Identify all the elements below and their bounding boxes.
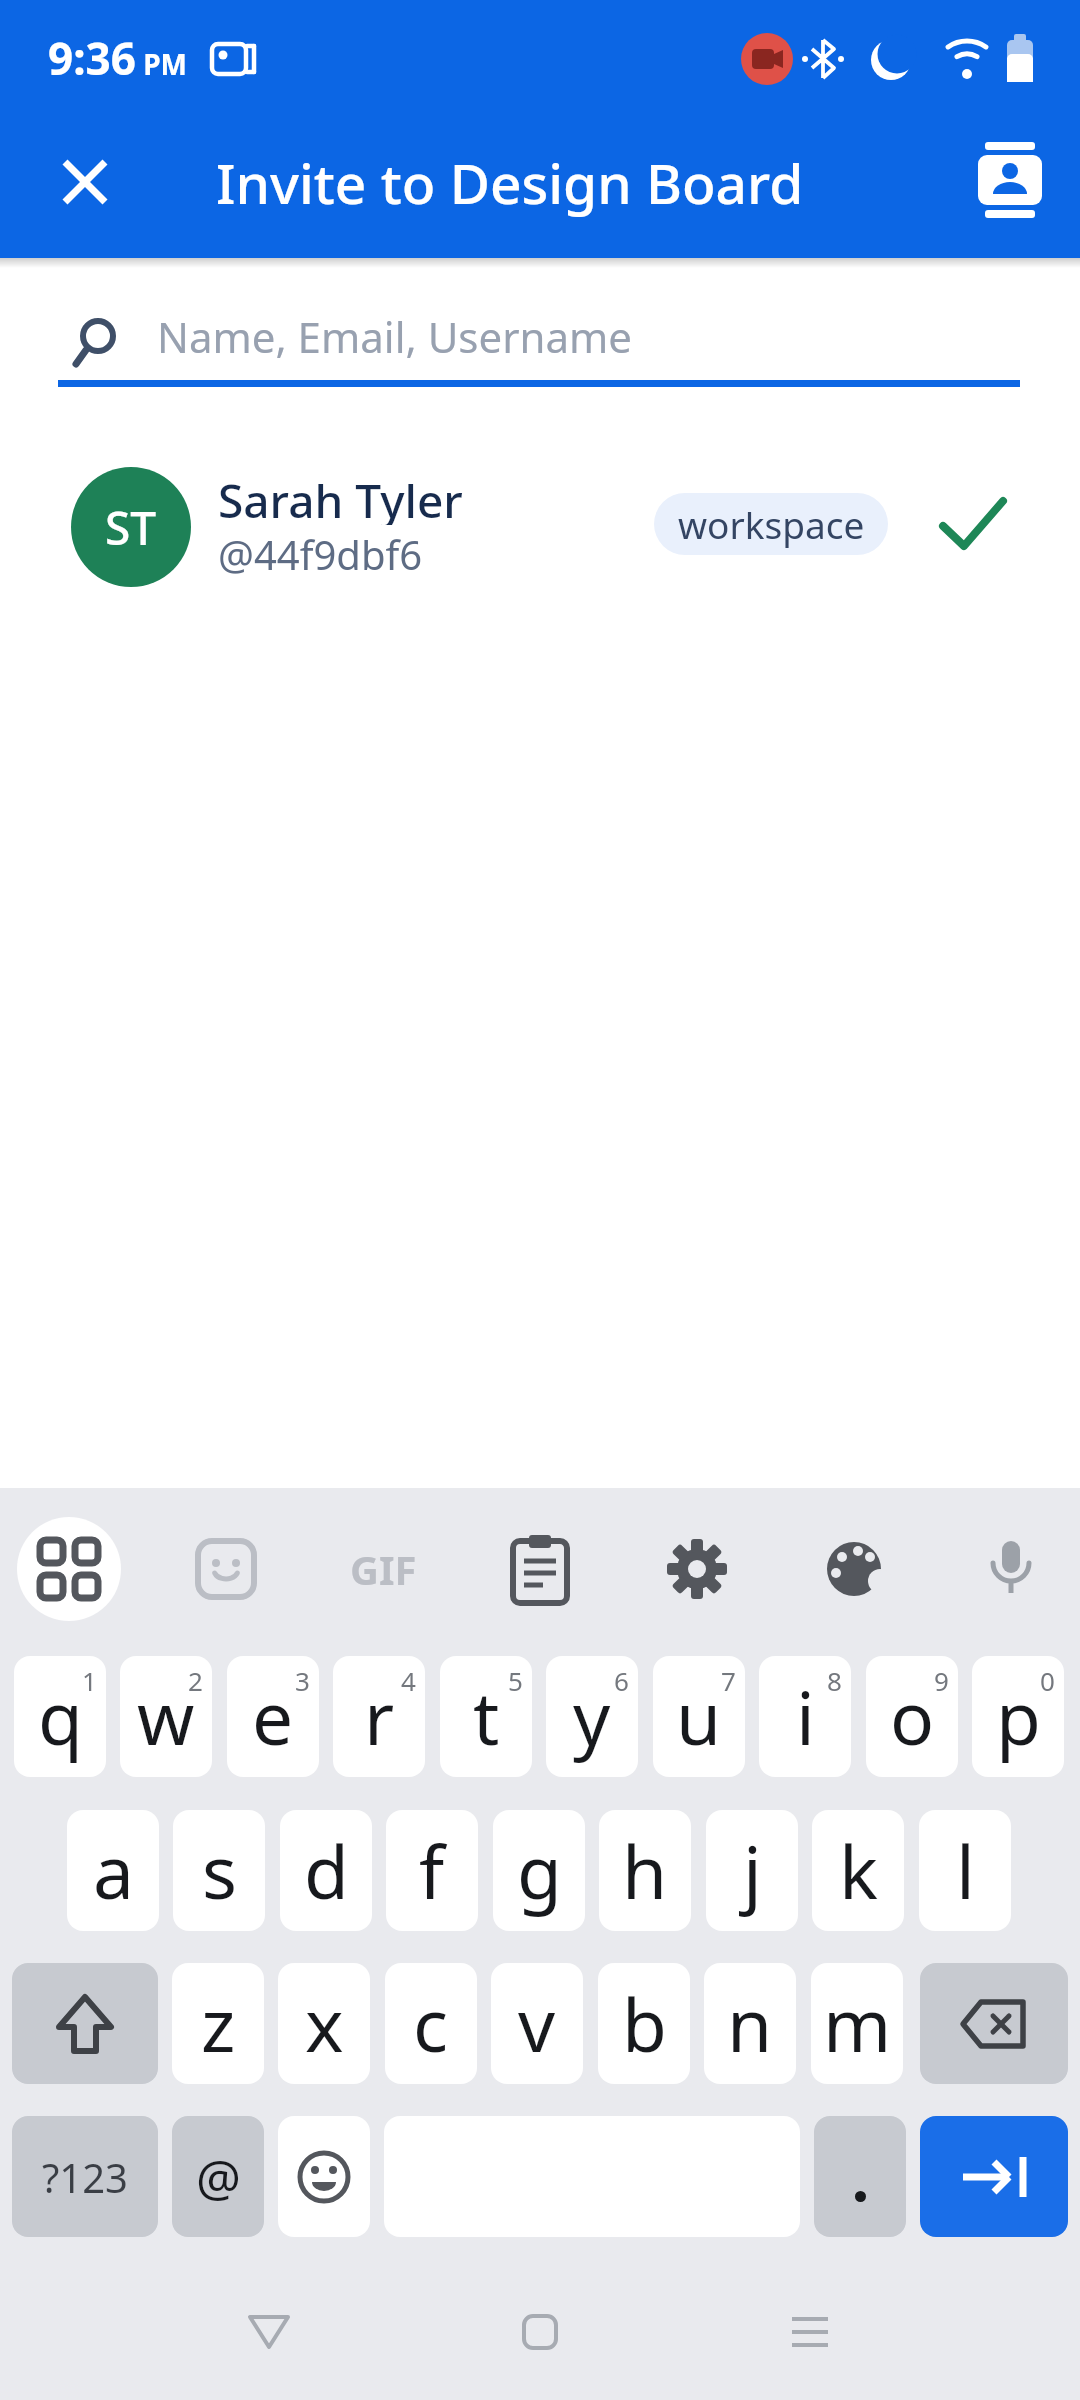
button[interactable]: a (67, 1810, 159, 1931)
staticText: d (304, 1821, 349, 1920)
button[interactable]: x (278, 1963, 370, 2084)
staticText: Name, Email, Username (157, 308, 632, 365)
button[interactable]: j (706, 1810, 798, 1931)
staticText: w (137, 1667, 195, 1766)
button[interactable] (920, 2116, 1068, 2237)
button[interactable]: d (280, 1810, 372, 1931)
button[interactable]: ST (0, 455, 1080, 600)
staticText: r (364, 1667, 395, 1766)
button[interactable]: u (653, 1656, 745, 1777)
staticText: v (518, 1974, 556, 2073)
staticText: t (473, 1667, 500, 1766)
button[interactable]: b (598, 1963, 690, 2084)
staticText: 8 (827, 1663, 842, 1698)
staticText: p (996, 1667, 1041, 1766)
staticText: Invite to Design Board (216, 145, 804, 220)
button[interactable]: GIF (330, 1533, 436, 1605)
staticText: 0 (1040, 1663, 1055, 1698)
button[interactable] (960, 130, 1060, 230)
button[interactable]: w (120, 1656, 212, 1777)
staticText: x (305, 1974, 344, 2073)
staticText: n (727, 1974, 773, 2073)
button[interactable]: e (227, 1656, 319, 1777)
button[interactable]: t (440, 1656, 532, 1777)
staticText: 7 (721, 1663, 736, 1698)
button[interactable] (975, 1533, 1047, 1605)
button[interactable] (17, 1517, 121, 1621)
button[interactable] (48, 145, 122, 219)
button[interactable] (920, 1963, 1068, 2084)
button[interactable]: c (385, 1963, 477, 2084)
button[interactable]: k (812, 1810, 904, 1931)
staticText: h (622, 1821, 668, 1920)
button[interactable]: f (386, 1810, 478, 1931)
staticText: l (956, 1821, 975, 1920)
button[interactable]: s (173, 1810, 265, 1931)
staticText: k (839, 1821, 878, 1920)
staticText: q (38, 1667, 83, 1766)
button[interactable]: i (759, 1656, 851, 1777)
button[interactable] (814, 2116, 906, 2237)
button[interactable]: Name, Email, Username (58, 292, 1020, 388)
staticText: c (413, 1974, 449, 2073)
staticText: 9:36 PM (48, 28, 187, 88)
staticText: s (202, 1821, 237, 1920)
staticText: 1 (82, 1663, 97, 1698)
staticText: u (676, 1667, 722, 1766)
staticText: b (622, 1974, 667, 2073)
staticText: 6 (614, 1663, 629, 1698)
staticText: f (419, 1821, 445, 1920)
button[interactable]: q (14, 1656, 106, 1777)
staticText: 2 (188, 1663, 203, 1698)
button[interactable]: z (172, 1963, 264, 2084)
staticText: GIF (350, 1542, 417, 1596)
staticText: z (201, 1974, 236, 2073)
staticText: Sarah Tyler (218, 469, 463, 525)
button[interactable]: y (546, 1656, 638, 1777)
staticText: ?123 (42, 2150, 128, 2204)
staticText: ST (105, 496, 157, 559)
button[interactable] (774, 2296, 846, 2368)
button[interactable]: l (919, 1810, 1011, 1931)
staticText: o (890, 1667, 935, 1766)
staticText: m (823, 1974, 892, 2073)
button[interactable]: @ (172, 2116, 264, 2237)
button[interactable]: h (599, 1810, 691, 1931)
button[interactable]: workspace (654, 493, 888, 555)
button[interactable] (233, 2296, 305, 2368)
staticText: @ (196, 2143, 241, 2211)
staticText: g (517, 1821, 562, 1920)
staticText: i (796, 1667, 815, 1766)
staticText: 9 (934, 1663, 949, 1698)
button[interactable]: v (491, 1963, 583, 2084)
button[interactable] (818, 1533, 890, 1605)
staticText: j (743, 1821, 762, 1920)
button[interactable] (278, 2116, 370, 2237)
button[interactable] (661, 1533, 733, 1605)
staticText: 3 (295, 1663, 310, 1698)
button[interactable]: r (333, 1656, 425, 1777)
button[interactable] (504, 2296, 576, 2368)
staticText: workspace (678, 499, 865, 549)
button[interactable]: o (866, 1656, 958, 1777)
staticText: e (252, 1667, 294, 1766)
staticText: 4 (401, 1663, 416, 1698)
button[interactable]: n (704, 1963, 796, 2084)
button[interactable]: m (811, 1963, 903, 2084)
staticText: y (573, 1667, 611, 1766)
staticText: 5 (508, 1663, 523, 1698)
button[interactable] (12, 1963, 158, 2084)
button[interactable] (504, 1529, 576, 1609)
staticText: a (93, 1821, 134, 1920)
button[interactable]: ?123 (12, 2116, 158, 2237)
button[interactable] (190, 1533, 262, 1605)
button[interactable]: p (972, 1656, 1064, 1777)
button[interactable]: g (493, 1810, 585, 1931)
staticText: @44f9dbf6 (218, 527, 423, 577)
